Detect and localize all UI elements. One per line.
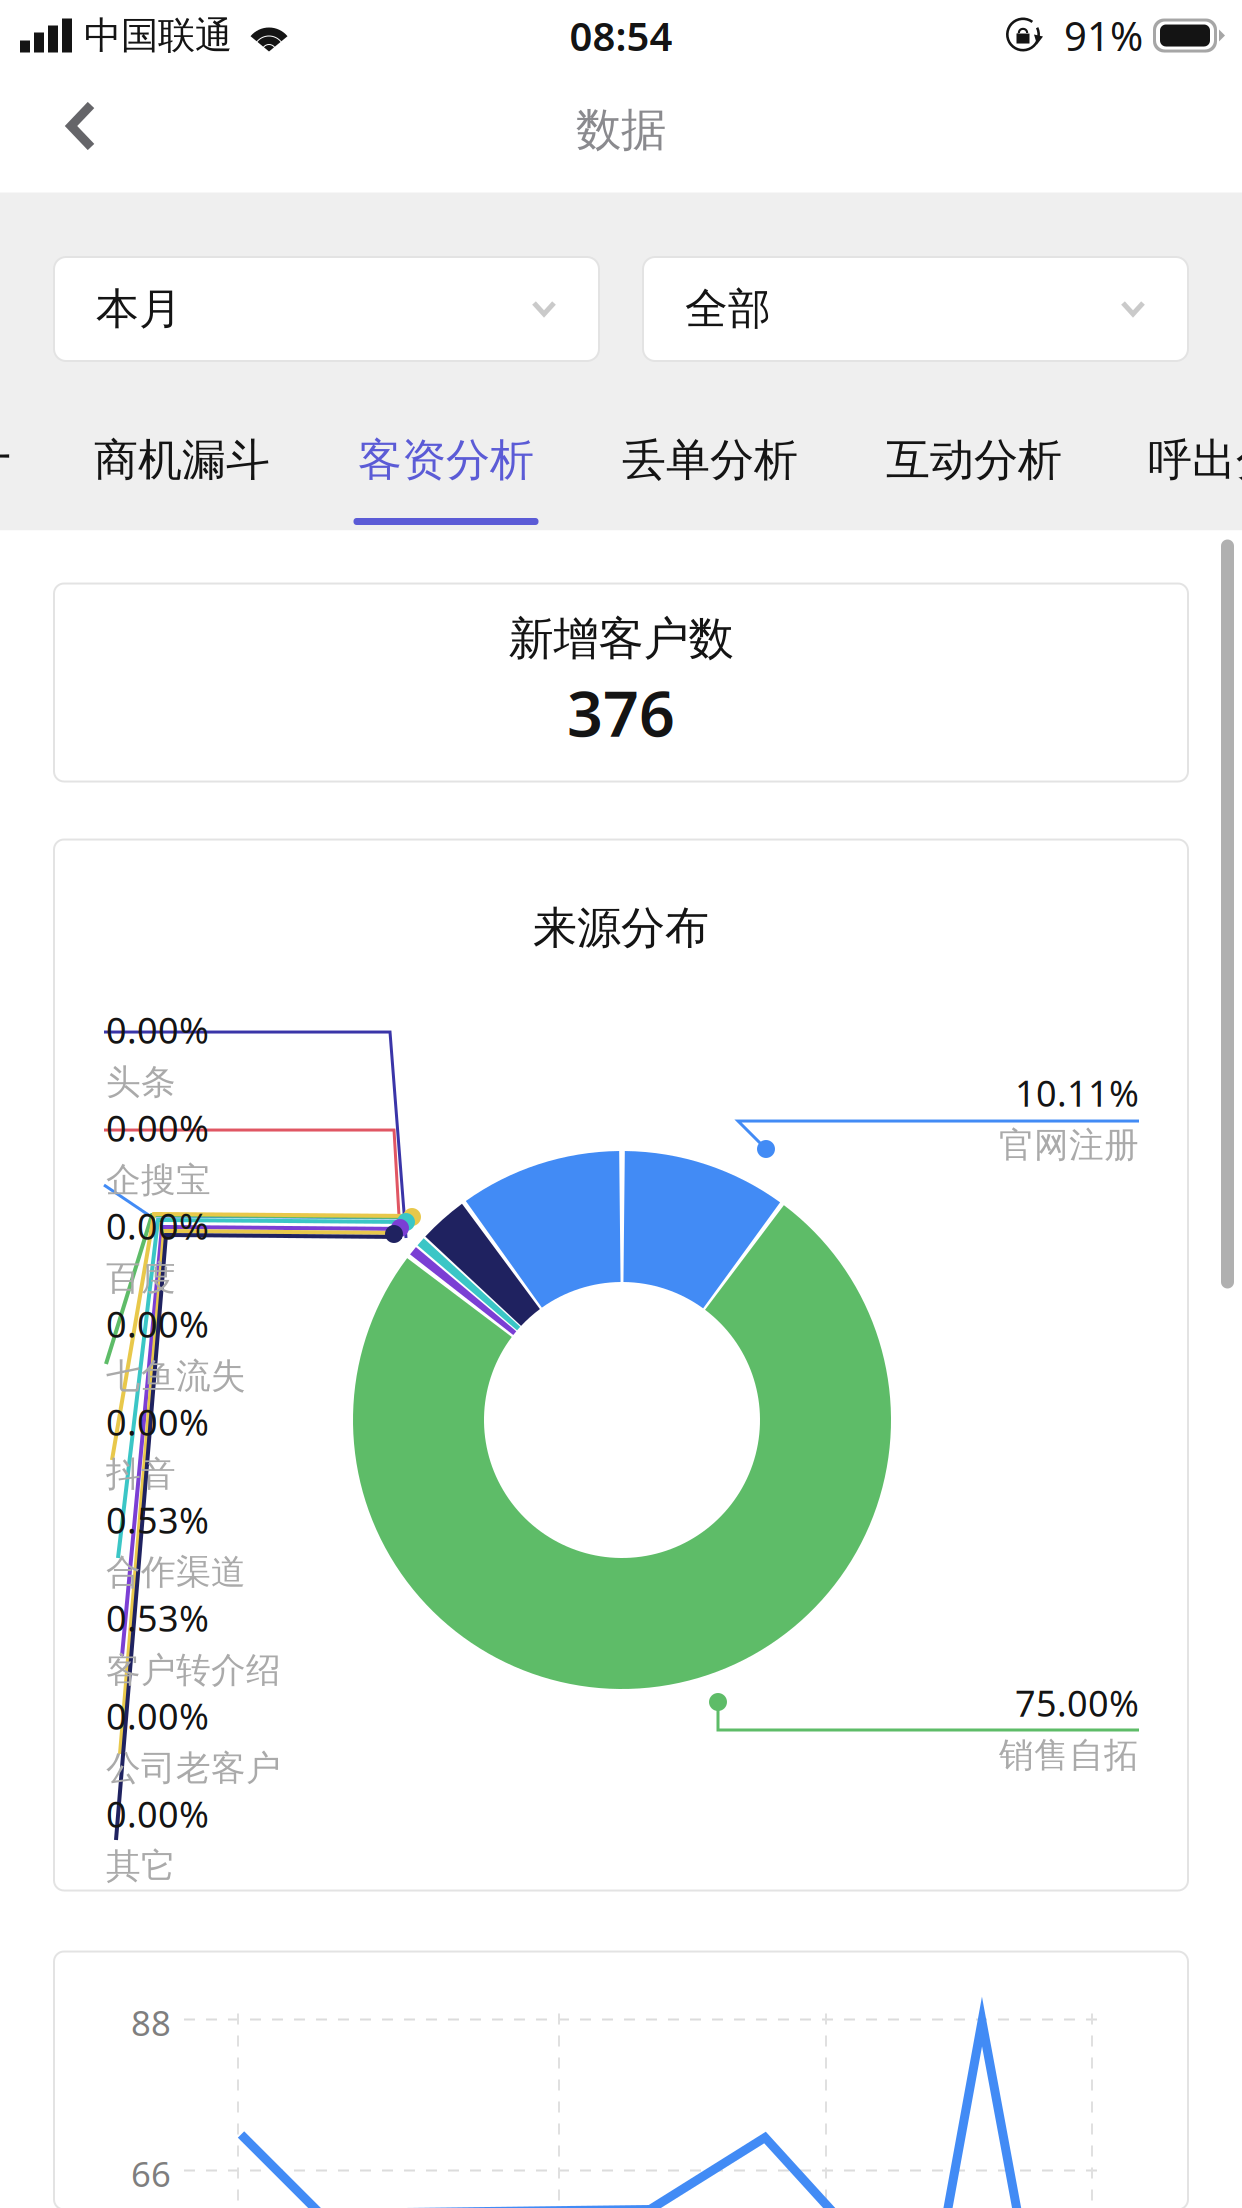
staticText: 10.11% xyxy=(1015,1069,1139,1117)
staticText: 0.00% xyxy=(106,1104,209,1152)
staticText: 08:54 xyxy=(569,9,672,62)
staticText: 官网注册 xyxy=(999,1124,1139,1166)
staticText: 其它 xyxy=(106,1845,176,1887)
button[interactable]: 全部 xyxy=(643,257,1188,361)
staticText: 全部 xyxy=(685,283,771,335)
staticText: 公司老客户 xyxy=(106,1747,281,1789)
staticText: 本月 xyxy=(96,283,182,335)
staticText: 互动分析 xyxy=(886,433,1062,487)
staticText: 合作渠道 xyxy=(106,1551,246,1593)
button[interactable]: 商机漏斗 xyxy=(82,432,282,525)
staticText: 企搜宝 xyxy=(106,1159,211,1201)
staticText: 91% xyxy=(1064,9,1143,62)
staticText: 抖音 xyxy=(106,1453,176,1495)
staticText: 来源分布 xyxy=(533,901,709,955)
staticText: 0.00% xyxy=(106,1006,209,1054)
staticText: 客资分析 xyxy=(358,433,534,487)
staticText: 0.00% xyxy=(106,1790,209,1838)
staticText: 丢单分析 xyxy=(622,433,798,487)
button[interactable]: 丢单分析 xyxy=(610,432,810,525)
button[interactable]: 客资分析 xyxy=(346,432,546,525)
staticText: 数据 xyxy=(576,102,666,158)
staticText: 商机漏斗 xyxy=(94,433,270,487)
staticText: 销售自拓 xyxy=(999,1734,1139,1776)
staticText: 75.00% xyxy=(1015,1679,1139,1727)
staticText: 0.00% xyxy=(106,1398,209,1446)
staticText: 66 xyxy=(131,2150,171,2196)
staticText: 0.00% xyxy=(106,1202,209,1250)
staticText: 新增客户数 xyxy=(508,611,733,667)
staticText: 0.00% xyxy=(106,1692,209,1740)
staticText: 88 xyxy=(131,1999,171,2045)
staticText: 呼出分析 xyxy=(1148,433,1242,487)
staticText: 0.00% xyxy=(106,1300,209,1348)
button[interactable]: Back xyxy=(0,74,126,186)
staticText: 七鱼流失 xyxy=(106,1355,246,1397)
staticText: 客户转介绍 xyxy=(106,1649,281,1691)
button[interactable]: 本月 xyxy=(54,257,599,361)
staticText: 中国联通 xyxy=(84,13,232,58)
staticText: 头条 xyxy=(106,1061,176,1103)
staticText: 十 xyxy=(0,433,11,487)
button[interactable]: 互动分析 xyxy=(874,432,1074,525)
staticText: 376 xyxy=(567,671,675,754)
staticText: 百度 xyxy=(106,1257,176,1299)
staticText: 0.53% xyxy=(106,1594,209,1642)
staticText: 0.53% xyxy=(106,1496,209,1544)
